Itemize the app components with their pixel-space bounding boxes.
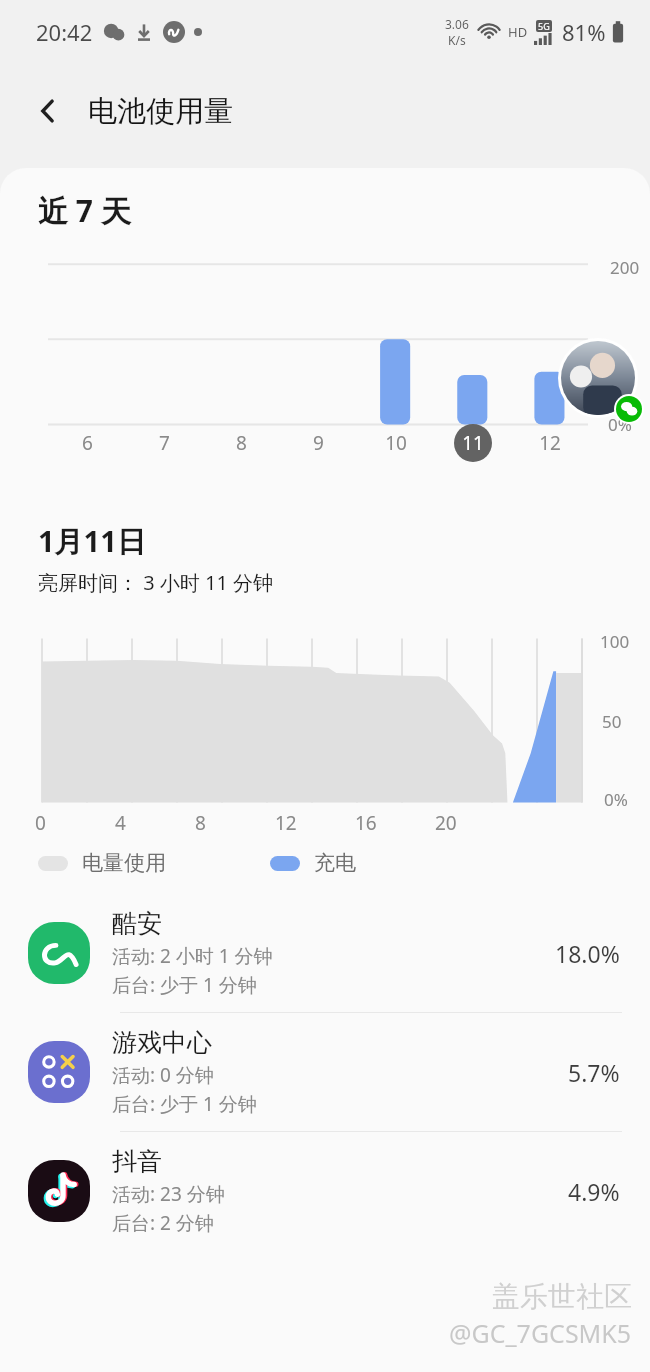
staticText: 16 — [355, 810, 377, 836]
staticText: 亮屏时间： 3 小时 11 分钟 — [38, 569, 274, 596]
staticText: 100 — [600, 630, 630, 653]
staticText: 后台: 2 分钟 — [112, 1210, 214, 1236]
staticText: 12 — [539, 430, 561, 456]
staticText: 4.9% — [568, 1176, 620, 1207]
staticText: 200 — [610, 256, 640, 279]
staticText: 8 — [195, 810, 206, 836]
staticText: 5.7% — [568, 1057, 620, 1088]
staticText: 18.0% — [555, 938, 620, 969]
staticText: 0% — [608, 413, 632, 436]
button[interactable]: 酷安 — [0, 894, 650, 1013]
staticText: 11 — [462, 430, 484, 456]
staticText: 活动: 0 分钟 — [112, 1062, 214, 1088]
staticText: 9 — [313, 430, 324, 456]
staticText: K/s — [448, 32, 466, 48]
staticText: 后台: 少于 1 分钟 — [112, 1091, 257, 1117]
staticText: 抖音 — [112, 1146, 162, 1177]
staticText: 活动: 23 分钟 — [112, 1181, 225, 1207]
staticText: 12 — [275, 810, 297, 836]
staticText: 酷安 — [112, 908, 162, 939]
staticText: 20:42 — [36, 17, 93, 47]
staticText: 盖乐世社区 — [492, 1279, 632, 1314]
staticText: 7 — [159, 430, 170, 456]
staticText: 8 — [236, 430, 247, 456]
staticText: 1月11日 — [38, 521, 146, 561]
staticText: 4 — [115, 810, 126, 836]
button[interactable]: 游戏中心 — [0, 1013, 650, 1132]
staticText: 3.06 — [445, 16, 469, 32]
staticText: 近 7 天 — [38, 190, 131, 231]
staticText: HD — [508, 23, 528, 41]
staticText: 81% — [562, 17, 606, 47]
staticText: 后台: 少于 1 分钟 — [112, 972, 257, 998]
staticText: 游戏中心 — [112, 1027, 212, 1058]
staticText: @GC_7GCSMK5 — [449, 1316, 632, 1350]
staticText: 电池使用量 — [88, 93, 233, 130]
staticText: 20 — [435, 810, 457, 836]
button[interactable]: Floating chat bubble — [558, 338, 644, 424]
staticText: 0% — [604, 788, 628, 811]
staticText: 充电 — [314, 850, 356, 876]
staticText: 6 — [82, 430, 93, 456]
staticText: 活动: 2 小时 1 分钟 — [112, 943, 273, 969]
staticText: 5G — [538, 20, 550, 32]
staticText: 电量使用 — [82, 850, 166, 876]
button[interactable]: Back — [22, 85, 74, 137]
staticText: 10 — [385, 430, 407, 456]
staticText: 50 — [602, 710, 622, 733]
staticText: 0 — [35, 810, 46, 836]
button[interactable]: 抖音 — [0, 1132, 650, 1250]
